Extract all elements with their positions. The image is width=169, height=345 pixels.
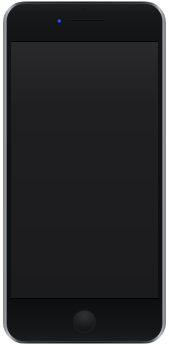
button[interactable]: Smartphone device mockup xyxy=(0,0,169,345)
